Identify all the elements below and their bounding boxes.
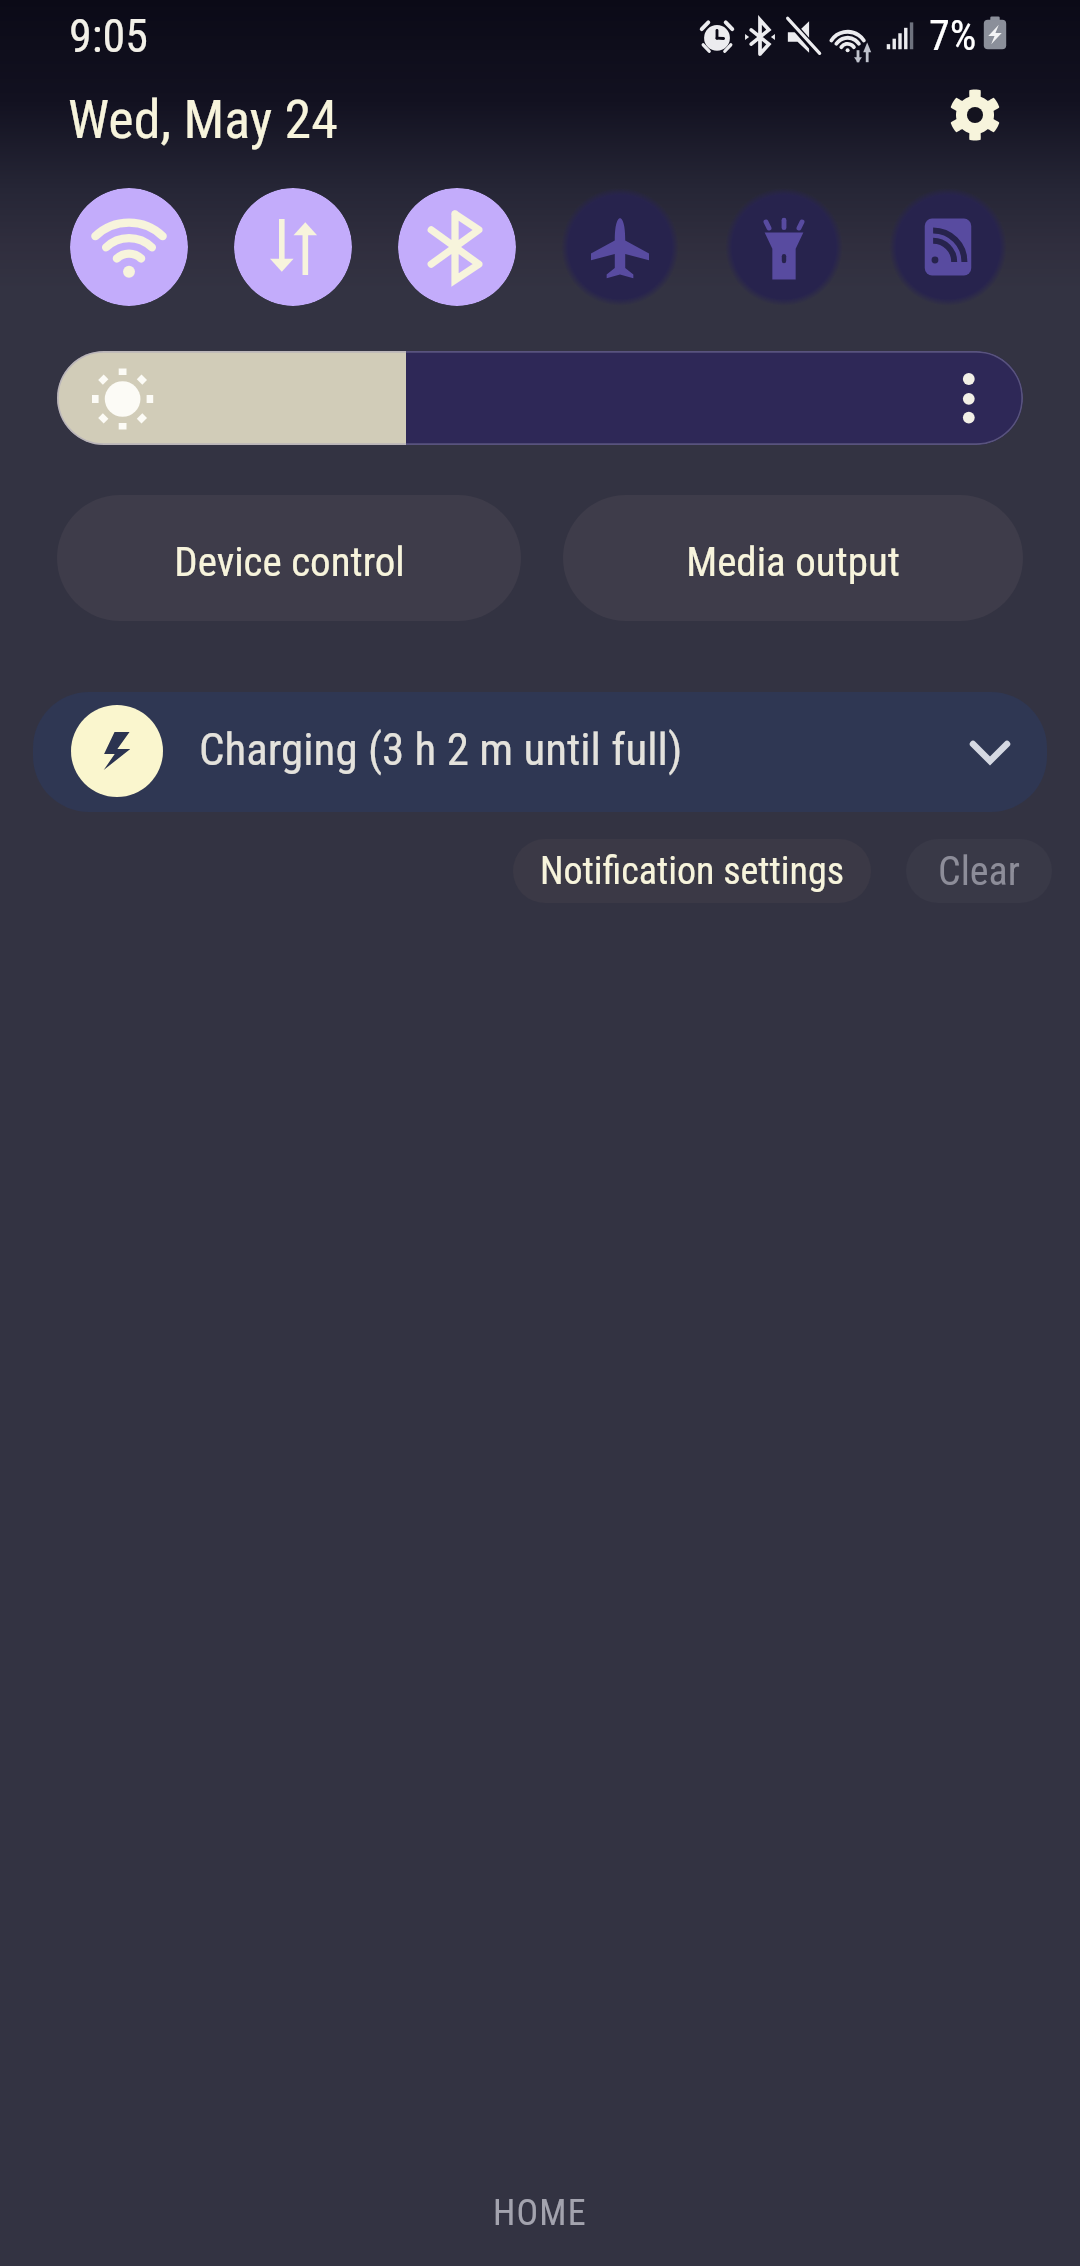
button[interactable]: Wi-Fi [70, 188, 188, 306]
button[interactable]: Media output [563, 495, 1023, 621]
button[interactable]: Smart View [889, 188, 1007, 306]
staticText: 7% [929, 11, 977, 60]
button[interactable]: Charging (3 h 2 m until full) [33, 692, 1047, 812]
staticText: Wed, May 24 [68, 88, 338, 151]
staticText: 9:05 [69, 9, 148, 63]
button[interactable]: Clear [906, 839, 1052, 903]
staticText: Charging (3 h 2 m until full) [199, 723, 683, 776]
staticText: HOME [493, 2192, 587, 2234]
button[interactable]: Bluetooth [398, 188, 516, 306]
button[interactable]: Airplane mode [561, 188, 679, 306]
staticText: Notification settings [540, 849, 844, 894]
button[interactable]: Notification settings [513, 839, 871, 903]
button[interactable]: Flashlight [725, 188, 843, 306]
staticText: Media output [686, 538, 900, 586]
staticText: Device control [174, 538, 405, 586]
button[interactable]: Device control [57, 495, 521, 621]
button[interactable]: Settings [933, 77, 1017, 153]
staticText: Clear [938, 848, 1020, 895]
button[interactable]: Brightness [57, 351, 1023, 445]
button[interactable]: Mobile data [234, 188, 352, 306]
